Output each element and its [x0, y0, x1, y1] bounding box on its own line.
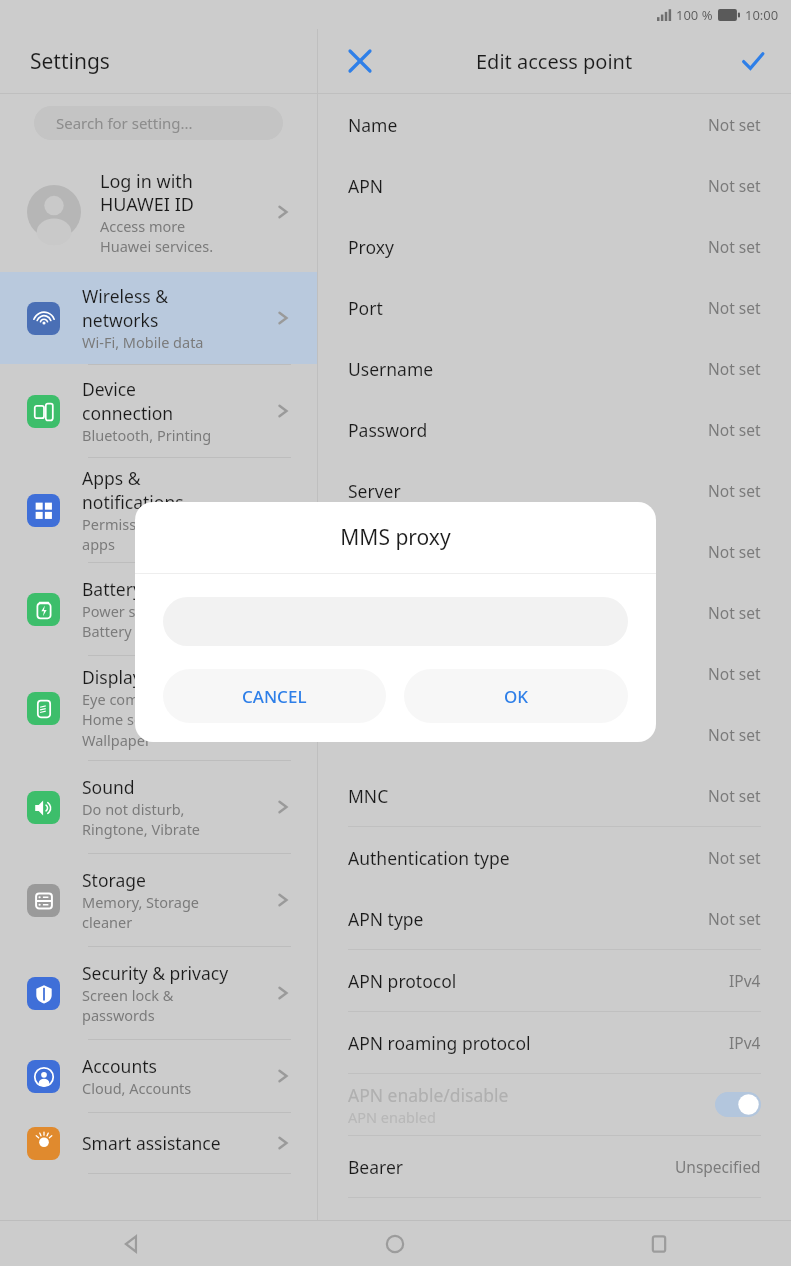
button[interactable]: Log in with HUAWEI ID: [0, 158, 317, 266]
button[interactable]: Storage: [0, 854, 317, 946]
staticText: Proxy: [348, 235, 708, 259]
staticText: MMSC: [348, 662, 708, 686]
staticText: Security & privacy: [82, 961, 229, 985]
staticText: Not set: [708, 908, 761, 929]
button[interactable]: Display: [0, 656, 317, 760]
staticText: Not set: [708, 602, 761, 623]
button[interactable]: Battery: [0, 563, 317, 655]
staticText: Name: [348, 113, 708, 137]
button[interactable]: Username: [348, 338, 761, 399]
button[interactable]: Back: [0, 1221, 263, 1266]
staticText: Not set: [708, 480, 761, 501]
staticText: Screen lock & passwords: [82, 985, 174, 1026]
staticText: Log in with HUAWEI ID: [100, 169, 194, 216]
button[interactable]: APN enable/disable: [348, 1074, 761, 1135]
staticText: Port: [348, 296, 708, 320]
button[interactable]: Accounts: [0, 1040, 317, 1112]
staticText: Eye comfort, Home screen style, Wallpape…: [82, 689, 212, 751]
button[interactable]: Sound: [0, 761, 317, 853]
staticText: Not set: [708, 297, 761, 318]
staticText: Sound: [82, 775, 135, 799]
button[interactable]: Apps & notifications: [0, 458, 317, 562]
staticText: Unspecified: [675, 1156, 761, 1177]
staticText: MNC: [348, 784, 708, 808]
staticText: MCC: [348, 723, 708, 747]
button[interactable]: Bearer: [348, 1136, 761, 1197]
button[interactable]: APN type: [348, 888, 761, 949]
staticText: Not set: [708, 419, 761, 440]
staticText: APN: [348, 174, 708, 198]
staticText: Username: [348, 357, 708, 381]
staticText: APN roaming protocol: [348, 1031, 729, 1055]
button[interactable]: MNC: [348, 765, 761, 826]
button[interactable]: CANCEL: [163, 669, 386, 723]
staticText: Settings: [30, 47, 110, 76]
staticText: Password: [348, 418, 708, 442]
button[interactable]: Server: [348, 460, 761, 521]
staticText: Not set: [708, 175, 761, 196]
staticText: CANCEL: [242, 685, 307, 708]
staticText: Not set: [708, 724, 761, 745]
staticText: Smart assistance: [82, 1131, 221, 1155]
button[interactable]: Authentication type: [348, 827, 761, 888]
staticText: Accounts: [82, 1054, 157, 1078]
staticText: MMS proxy: [348, 540, 708, 564]
staticText: Display: [82, 665, 142, 689]
staticText: OK: [504, 685, 529, 708]
staticText: Not set: [708, 541, 761, 562]
staticText: Bluetooth, Printing: [82, 425, 212, 445]
button[interactable]: Close: [336, 37, 384, 85]
staticText: Not set: [708, 114, 761, 135]
staticText: MMS port: [348, 601, 708, 625]
staticText: APN type: [348, 907, 708, 931]
staticText: Access more Huawei services.: [100, 216, 214, 256]
staticText: Memory, Storage cleaner: [82, 892, 200, 933]
staticText: Not set: [708, 785, 761, 806]
button[interactable]: Password: [348, 399, 761, 460]
staticText: Not set: [708, 358, 761, 379]
staticText: Do not disturb, Ringtone, Vibrate: [82, 799, 201, 840]
button[interactable]: Proxy: [348, 216, 761, 277]
staticText: Edit access point: [476, 48, 633, 75]
staticText: Power saving mode, Battery usage: [82, 601, 220, 642]
staticText: Search for setting...: [56, 113, 193, 133]
staticText: Cloud, Accounts: [82, 1078, 192, 1098]
staticText: IPv4: [729, 1032, 761, 1053]
staticText: Permissions, Default apps: [82, 514, 223, 555]
staticText: 10:00: [745, 6, 779, 24]
staticText: Apps & notifications: [82, 466, 184, 514]
staticText: Server: [348, 479, 708, 503]
staticText: Wi-Fi, Mobile data: [82, 332, 204, 352]
staticText: 100 %: [676, 6, 713, 24]
button[interactable]: MMS proxy: [348, 521, 761, 582]
staticText: Not set: [708, 847, 761, 868]
button[interactable]: MCC: [348, 704, 761, 765]
button[interactable]: APN: [348, 155, 761, 216]
staticText: APN enable/disable: [348, 1083, 509, 1107]
button[interactable]: Smart assistance: [0, 1113, 317, 1173]
staticText: Not set: [708, 236, 761, 257]
button[interactable]: Device connection: [0, 365, 317, 457]
staticText: APN protocol: [348, 969, 729, 993]
staticText: Storage: [82, 868, 146, 892]
button[interactable]: Port: [348, 277, 761, 338]
button[interactable]: MMS port: [348, 582, 761, 643]
staticText: Wireless & networks: [82, 284, 169, 332]
button[interactable]: Recents: [527, 1221, 791, 1266]
button[interactable]: OK: [404, 669, 628, 723]
staticText: Battery: [82, 577, 142, 601]
staticText: Not set: [708, 663, 761, 684]
staticText: APN enabled: [348, 1107, 436, 1127]
button[interactable]: Save: [729, 37, 777, 85]
staticText: Authentication type: [348, 846, 708, 870]
button[interactable]: MMSC: [348, 643, 761, 704]
staticText: Device connection: [82, 377, 174, 425]
button[interactable]: Wireless & networks: [0, 272, 317, 364]
button[interactable]: APN protocol: [348, 950, 761, 1011]
button[interactable]: Search for setting...: [34, 106, 283, 140]
button[interactable]: APN roaming protocol: [348, 1012, 761, 1073]
button[interactable]: Name: [348, 94, 761, 155]
button[interactable]: Home: [263, 1221, 527, 1266]
button[interactable]: Security & privacy: [0, 947, 317, 1039]
